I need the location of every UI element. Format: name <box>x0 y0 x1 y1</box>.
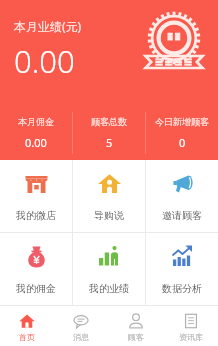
staticText: 0 <box>179 135 186 150</box>
button[interactable]: 我的佣金 <box>0 233 72 305</box>
button[interactable]: 资讯库 <box>163 308 218 346</box>
staticText: 我的佣金 <box>16 282 56 295</box>
staticText: 首页 <box>19 332 35 342</box>
staticText: 我的业绩 <box>89 282 129 295</box>
button[interactable]: 导购说 <box>73 160 145 232</box>
staticText: 顾客 <box>128 332 144 342</box>
staticText: 0.00 <box>14 40 75 82</box>
button[interactable]: 本月佣金 <box>0 106 72 160</box>
button[interactable]: 今日新增顾客 <box>146 106 218 160</box>
button[interactable]: 首页 <box>0 308 54 346</box>
staticText: 本月佣金 <box>18 116 54 127</box>
staticText: 数据分析 <box>162 282 202 295</box>
staticText: 顾客总数 <box>91 116 127 127</box>
staticText: 0.00 <box>25 135 47 150</box>
staticText: 5 <box>106 135 113 150</box>
staticText: 本月业绩(元) <box>14 18 82 34</box>
button[interactable]: 消息 <box>54 308 108 346</box>
button[interactable]: 数据分析 <box>146 233 218 305</box>
button[interactable]: 顾客 <box>108 308 163 346</box>
staticText: 资讯库 <box>179 332 203 342</box>
staticText: 我的微店 <box>16 209 56 222</box>
staticText: 邀请顾客 <box>162 209 202 222</box>
button[interactable]: 我的业绩 <box>73 233 145 305</box>
staticText: 消息 <box>73 332 89 342</box>
staticText: 导购说 <box>94 209 124 222</box>
staticText: 今日新增顾客 <box>155 116 209 127</box>
button[interactable]: 业绩排名 <box>143 14 205 74</box>
button[interactable]: 顾客总数 <box>73 106 145 160</box>
button[interactable]: 邀请顾客 <box>146 160 218 232</box>
button[interactable]: 我的微店 <box>0 160 72 232</box>
